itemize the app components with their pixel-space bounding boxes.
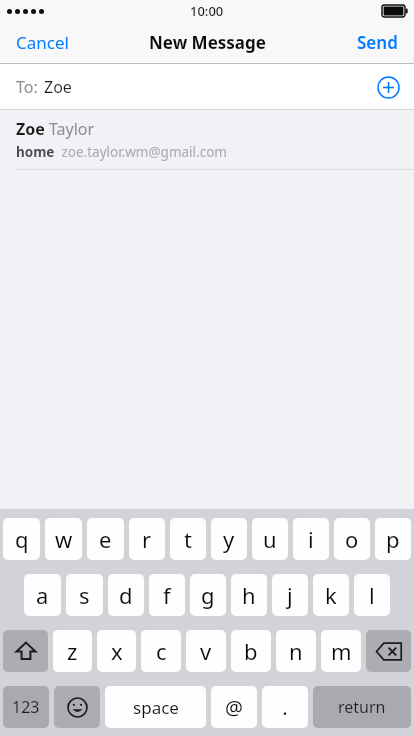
- staticText: u: [263, 524, 277, 554]
- button[interactable]: Send: [341, 23, 414, 62]
- staticText: Cancel: [16, 31, 69, 54]
- staticText: Send: [357, 31, 398, 54]
- button[interactable]: o: [334, 518, 370, 560]
- button[interactable]: f: [149, 574, 185, 616]
- button[interactable]: r: [129, 518, 165, 560]
- button[interactable]: u: [252, 518, 288, 560]
- staticText: 10:00: [190, 2, 224, 20]
- staticText: r: [142, 524, 152, 554]
- button[interactable]: t: [170, 518, 206, 560]
- button[interactable]: 123: [3, 686, 49, 728]
- staticText: d: [119, 580, 133, 610]
- staticText: l: [369, 580, 375, 610]
- staticText: f: [163, 580, 171, 610]
- staticText: New Message: [149, 31, 266, 54]
- button[interactable]: d: [108, 574, 144, 616]
- staticText: return: [338, 696, 386, 718]
- button[interactable]: .: [262, 686, 308, 728]
- staticText: a: [36, 580, 49, 610]
- button[interactable]: k: [313, 574, 349, 616]
- button[interactable]: @: [211, 686, 257, 728]
- button[interactable]: v: [186, 630, 226, 672]
- staticText: h: [242, 580, 256, 610]
- staticText: Zoe: [44, 76, 72, 98]
- button[interactable]: b: [231, 630, 271, 672]
- staticText: k: [325, 580, 337, 610]
- staticText: e: [99, 524, 112, 554]
- staticText: Zoe Taylor: [16, 118, 95, 140]
- staticText: .: [282, 694, 288, 721]
- staticText: w: [55, 524, 73, 554]
- button[interactable]: p: [375, 518, 411, 560]
- staticText: n: [289, 636, 303, 666]
- staticText: space: [133, 696, 179, 719]
- button[interactable]: space: [105, 686, 206, 728]
- staticText: q: [15, 524, 29, 554]
- staticText: @: [225, 694, 243, 721]
- button[interactable]: h: [231, 574, 267, 616]
- staticText: v: [200, 636, 212, 666]
- staticText: j: [287, 580, 293, 610]
- button[interactable]: j: [272, 574, 308, 616]
- staticText: To:: [16, 76, 38, 98]
- button[interactable]: Cancel: [0, 23, 85, 62]
- button[interactable]: Backspace: [366, 630, 411, 672]
- button[interactable]: return: [313, 686, 411, 728]
- button[interactable]: i: [293, 518, 329, 560]
- staticText: o: [345, 524, 359, 554]
- staticText: x: [111, 636, 123, 666]
- button[interactable]: c: [141, 630, 181, 672]
- button[interactable]: g: [190, 574, 226, 616]
- button[interactable]: Emoji: [54, 686, 100, 728]
- button[interactable]: y: [211, 518, 247, 560]
- staticText: i: [308, 524, 314, 554]
- button[interactable]: Add contact: [374, 73, 402, 101]
- button[interactable]: Shift: [3, 630, 48, 672]
- button[interactable]: a: [24, 574, 61, 616]
- button[interactable]: e: [87, 518, 124, 560]
- staticText: t: [184, 524, 192, 554]
- staticText: 123: [12, 696, 40, 718]
- button[interactable]: m: [321, 630, 361, 672]
- button[interactable]: w: [45, 518, 82, 560]
- button[interactable]: x: [97, 630, 136, 672]
- staticText: g: [201, 580, 215, 610]
- button[interactable]: l: [354, 574, 390, 616]
- button[interactable]: q: [3, 518, 40, 560]
- staticText: m: [331, 636, 352, 666]
- button[interactable]: Zoe Taylor: [0, 110, 414, 169]
- button[interactable]: s: [66, 574, 103, 616]
- staticText: c: [156, 636, 167, 666]
- staticText: home zoe.taylor.wm@gmail.com: [16, 143, 227, 161]
- staticText: b: [244, 636, 258, 666]
- staticText: y: [223, 524, 235, 554]
- staticText: z: [67, 636, 78, 666]
- staticText: p: [386, 524, 400, 554]
- button[interactable]: n: [276, 630, 316, 672]
- button[interactable]: z: [53, 630, 92, 672]
- staticText: s: [79, 580, 90, 610]
